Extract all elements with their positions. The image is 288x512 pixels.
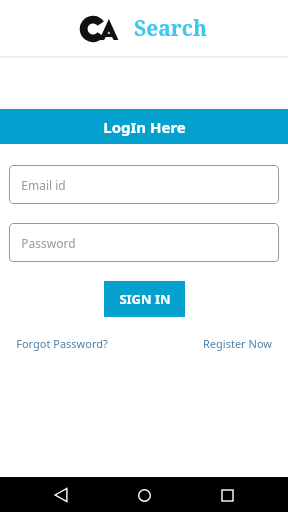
button[interactable]: LogIn Here — [0, 109, 288, 144]
staticText: Password — [21, 235, 76, 251]
staticText: SIGN IN — [119, 290, 171, 308]
button[interactable]: SIGN IN — [104, 281, 185, 317]
staticText: Forgot Password? — [16, 336, 108, 351]
staticText: Register Now — [203, 336, 272, 351]
staticText: Search — [134, 14, 207, 43]
staticText: Email id — [21, 177, 66, 193]
button[interactable]: Register Now — [203, 336, 272, 351]
button[interactable]: Forgot Password? — [16, 336, 108, 351]
button[interactable]: Password — [9, 223, 279, 262]
button[interactable]: Home — [129, 480, 159, 510]
button[interactable]: Recent apps — [212, 480, 242, 510]
button[interactable]: Back — [46, 480, 76, 510]
button[interactable]: Email id — [9, 165, 279, 204]
staticText: LogIn Here — [103, 117, 186, 137]
